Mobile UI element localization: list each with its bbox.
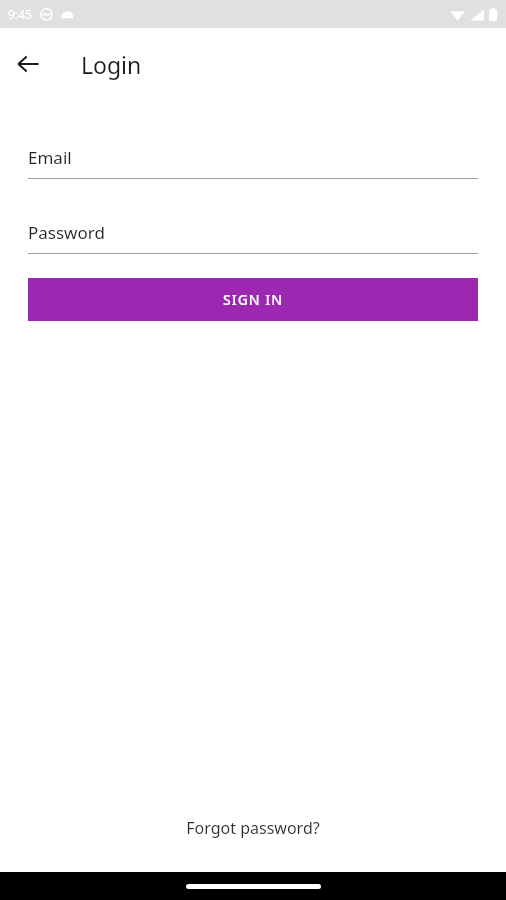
button[interactable]: Password [28, 221, 478, 254]
staticText: Login [81, 49, 142, 80]
button[interactable]: SIGN IN [28, 278, 478, 321]
staticText: Forgot password? [186, 817, 320, 839]
staticText: 9:45 [8, 6, 32, 22]
staticText: SIGN IN [223, 290, 284, 309]
button[interactable]: Back [6, 42, 50, 86]
button[interactable]: Forgot password? [186, 817, 320, 839]
staticText: Email [28, 146, 72, 169]
staticText: Password [28, 221, 105, 244]
button[interactable]: Email [28, 146, 478, 179]
